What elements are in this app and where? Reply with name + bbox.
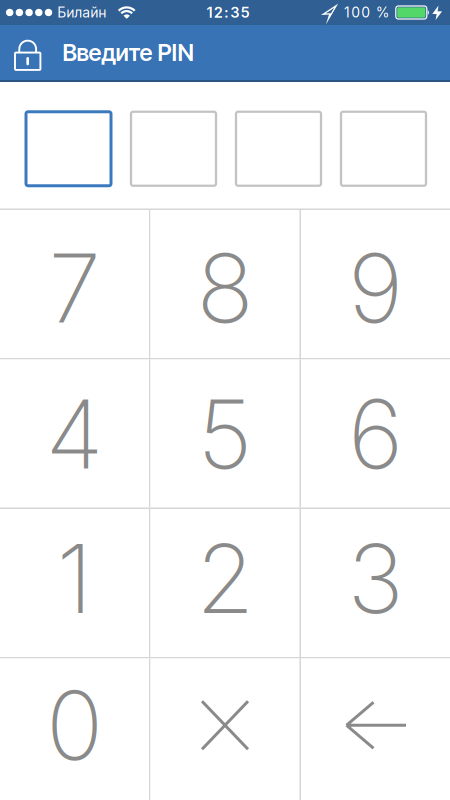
staticText: Введите PIN xyxy=(62,38,193,67)
button[interactable]: 3 xyxy=(301,509,450,657)
button[interactable]: 6 xyxy=(301,359,450,507)
staticText: 5 xyxy=(197,377,252,491)
staticText: : xyxy=(224,4,229,21)
button[interactable]: 0 xyxy=(0,658,149,800)
staticText: 3 xyxy=(230,4,239,21)
staticText: 9 xyxy=(348,231,403,345)
button[interactable]: 8 xyxy=(150,210,299,358)
staticText: 3 xyxy=(347,521,403,636)
button[interactable]: Cancel xyxy=(150,658,299,800)
button[interactable]: 9 xyxy=(301,210,450,358)
staticText: 1 xyxy=(206,4,212,21)
staticText: 0 xyxy=(46,668,103,782)
staticText: 1 xyxy=(344,4,350,21)
button[interactable]: 2 xyxy=(150,509,299,657)
staticText: 0 xyxy=(351,4,360,21)
staticText: 1 xyxy=(56,521,92,636)
staticText: 0 xyxy=(361,4,370,21)
button[interactable]: Delete xyxy=(301,658,450,800)
staticText: 7 xyxy=(48,231,100,345)
button[interactable]: 4 xyxy=(0,359,149,507)
button[interactable]: 1 xyxy=(0,509,149,657)
staticText: 6 xyxy=(348,377,403,491)
staticText: % xyxy=(376,4,390,21)
staticText: 2 xyxy=(196,521,254,636)
button[interactable]: 7 xyxy=(0,210,149,358)
staticText: 4 xyxy=(45,377,103,491)
staticText: 5 xyxy=(241,4,250,21)
staticText: 8 xyxy=(196,231,253,345)
button[interactable]: 5 xyxy=(150,359,299,507)
staticText: Билайн xyxy=(57,4,106,21)
staticText: 2 xyxy=(214,4,223,21)
